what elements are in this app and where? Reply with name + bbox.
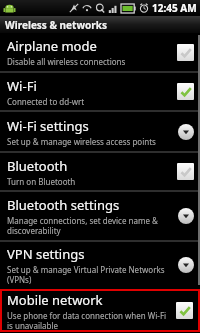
staticText: VPN settings — [7, 245, 85, 263]
button[interactable]: Mobile network — [2, 291, 198, 330]
button[interactable]: Unchecked — [177, 163, 194, 180]
button[interactable]: Checked — [177, 83, 194, 100]
staticText: Use phone for data connection when Wi-Fi… — [7, 310, 171, 330]
button[interactable]: Open settings — [178, 124, 194, 140]
button[interactable]: Checked — [176, 302, 193, 319]
staticText: Disable all wireless connections — [7, 56, 126, 67]
button[interactable]: Wi-Fi settings — [0, 112, 200, 151]
staticText: Bluetooth — [7, 157, 68, 175]
button[interactable]: Bluetooth — [0, 153, 200, 190]
staticText: Wireless & networks — [5, 18, 107, 32]
staticText: Bluetooth settings — [7, 196, 120, 214]
staticText: Wi-Fi — [7, 77, 37, 95]
button[interactable]: Open settings — [178, 208, 194, 224]
staticText: Set up & manage wireless access points — [7, 136, 156, 147]
staticText: Airplane mode — [7, 37, 97, 55]
staticText: Mobile network — [7, 291, 103, 309]
button[interactable]: Bluetooth settings — [0, 192, 200, 240]
button[interactable]: VPN settings — [0, 242, 200, 287]
staticText: Wi-Fi settings — [7, 117, 89, 135]
button[interactable]: Unchecked — [177, 44, 194, 61]
button[interactable]: Open settings — [178, 257, 194, 273]
staticText: Manage connections, set device name & di… — [7, 215, 173, 236]
staticText: Turn on Bluetooth — [7, 176, 76, 187]
staticText: 12:45 AM — [152, 1, 197, 15]
staticText: Connected to dd-wrt — [7, 96, 85, 107]
button[interactable]: Airplane mode — [0, 33, 200, 71]
button[interactable]: Wi-Fi — [0, 73, 200, 110]
staticText: Set up & manage Virtual Private Networks… — [7, 264, 173, 285]
